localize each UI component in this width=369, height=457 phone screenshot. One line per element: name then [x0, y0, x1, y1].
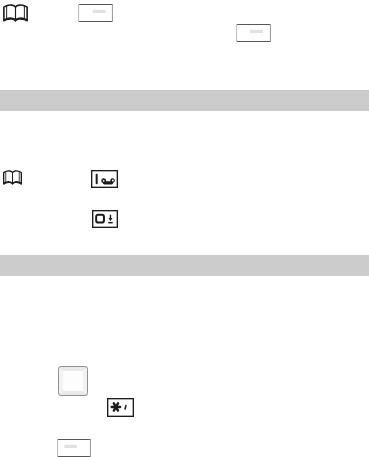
button[interactable]: List item — [0, 160, 369, 200]
button[interactable]: App bar — [0, 0, 369, 48]
button[interactable]: Footer action — [0, 432, 369, 457]
button[interactable]: Card — [40, 350, 160, 430]
button[interactable]: List item, download — [0, 200, 369, 240]
